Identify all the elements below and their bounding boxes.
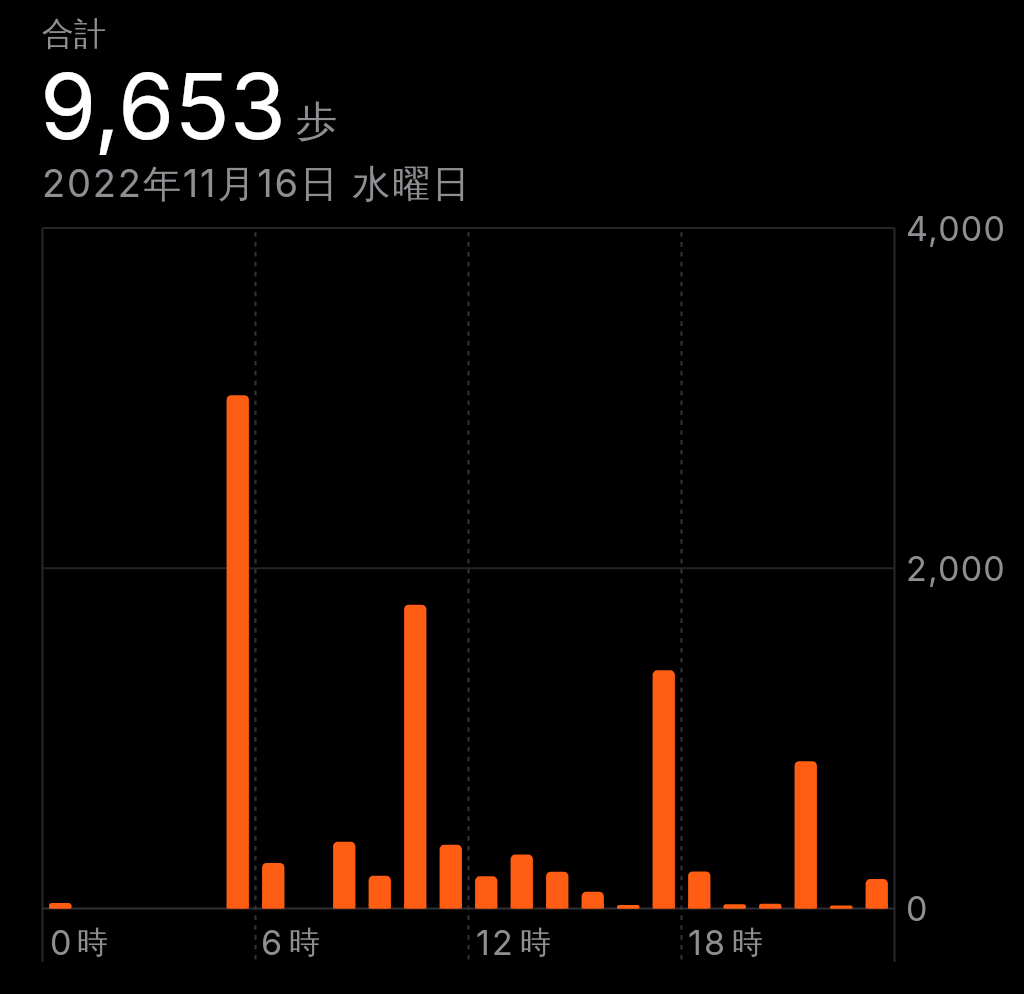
staticText: 時 xyxy=(289,923,320,962)
button[interactable]: 15時 98歩 xyxy=(575,228,611,909)
staticText: 時 xyxy=(732,923,763,962)
button[interactable]: 0時 32歩 xyxy=(43,228,79,909)
button[interactable]: 8時 392歩 xyxy=(327,228,363,909)
staticText: 時 xyxy=(77,923,108,962)
staticText: 0 xyxy=(906,888,928,929)
button[interactable]: 16時 21歩 xyxy=(611,228,647,909)
button[interactable]: 23時 173歩 xyxy=(859,228,895,909)
button[interactable]: 2時 0歩 xyxy=(114,228,150,909)
button[interactable]: 3時 0歩 xyxy=(149,228,185,909)
staticText: 合計 xyxy=(42,14,106,54)
button[interactable]: 7時 0歩 xyxy=(291,228,327,909)
staticText: 6 xyxy=(261,922,285,963)
button[interactable]: 21時 866歩 xyxy=(788,228,824,909)
button[interactable]: 1時 0歩 xyxy=(78,228,114,909)
button[interactable]: 9時 192歩 xyxy=(362,228,398,909)
staticText: 時 xyxy=(520,923,551,962)
staticText: 歩 xyxy=(296,96,337,148)
staticText: 0 xyxy=(50,922,74,963)
staticText: 2,000 xyxy=(906,548,1007,589)
button[interactable]: 14時 216歩 xyxy=(540,228,576,909)
staticText: 2022年11月16日 水曜日 xyxy=(42,160,472,208)
button[interactable]: 6時 268歩 xyxy=(256,228,292,909)
button[interactable]: 20時 28歩 xyxy=(753,228,789,909)
button[interactable]: 10時 1786歩 xyxy=(398,228,434,909)
button[interactable]: 4時 0歩 xyxy=(185,228,221,909)
staticText: 18 xyxy=(688,922,728,963)
button[interactable]: 18時 218歩 xyxy=(682,228,718,909)
button[interactable]: 19時 25歩 xyxy=(717,228,753,909)
button[interactable]: Hourly step chart, 9653 steps xyxy=(43,228,895,962)
staticText: 9,653 xyxy=(40,51,286,161)
button[interactable]: 13時 317歩 xyxy=(504,228,540,909)
button[interactable]: 5時 3017歩 xyxy=(220,228,256,909)
button[interactable]: 11時 374歩 xyxy=(433,228,469,909)
button[interactable]: 合計 xyxy=(30,6,490,206)
button[interactable]: 17時 1400歩 xyxy=(646,228,682,909)
staticText: 4,000 xyxy=(906,208,1007,249)
staticText: 12 xyxy=(476,922,515,963)
button[interactable]: 22時 18歩 xyxy=(824,228,860,909)
button[interactable]: 12時 189歩 xyxy=(469,228,505,909)
